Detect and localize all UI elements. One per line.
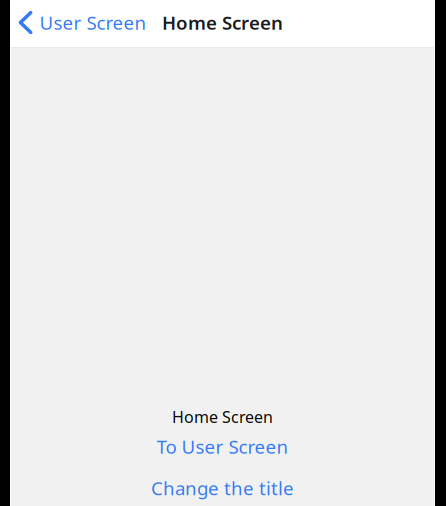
button[interactable]: To User Screen bbox=[144, 430, 300, 463]
staticText: Change the title bbox=[151, 475, 294, 500]
staticText: User Screen bbox=[39, 10, 146, 35]
button[interactable]: Change the title bbox=[139, 471, 306, 504]
staticText: Home Screen bbox=[172, 406, 273, 427]
staticText: To User Screen bbox=[156, 434, 288, 459]
button[interactable]: User Screen bbox=[11, 0, 156, 45]
staticText: Home Screen bbox=[162, 10, 283, 35]
